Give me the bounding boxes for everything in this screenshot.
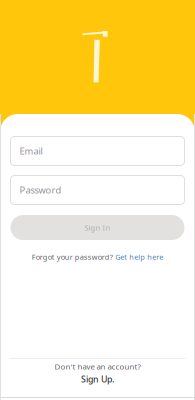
staticText: Don't have an account? xyxy=(54,361,140,372)
button[interactable]: Forgot your password? xyxy=(10,250,184,264)
staticText: Email xyxy=(19,145,42,157)
staticText: Sign In xyxy=(84,222,110,233)
staticText: Forgot your password? xyxy=(32,252,113,262)
staticText: Password xyxy=(19,184,61,196)
staticText: Sign Up. xyxy=(81,373,114,385)
staticText: Get help here xyxy=(115,252,163,262)
button[interactable]: Sign Up. xyxy=(81,373,114,385)
button[interactable]: Sign In xyxy=(10,215,184,240)
